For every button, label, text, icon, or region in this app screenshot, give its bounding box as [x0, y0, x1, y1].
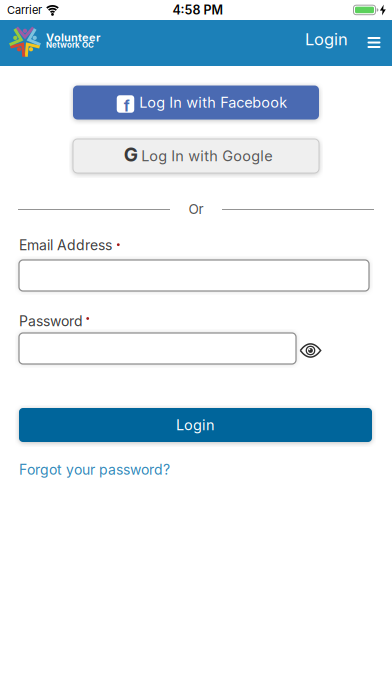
button[interactable]: f: [73, 85, 319, 119]
staticText: G: [124, 143, 138, 166]
button[interactable]: G: [73, 139, 319, 173]
staticText: Password: [19, 313, 83, 329]
staticText: Log In with Google: [141, 147, 272, 164]
staticText: Login: [176, 416, 215, 433]
staticText: 4:58 PM: [172, 3, 223, 17]
staticText: Forgot your password?: [19, 461, 170, 478]
staticText: Volunteer: [46, 31, 100, 44]
staticText: Or: [188, 201, 203, 217]
staticText: Carrier: [7, 3, 42, 16]
button[interactable]: Forgot your password?: [19, 461, 170, 478]
button[interactable]: Menu: [367, 37, 380, 48]
staticText: Login: [305, 29, 348, 49]
button[interactable]: Show password: [299, 342, 321, 358]
button[interactable]: Login: [19, 408, 372, 442]
staticText: Email Address: [19, 237, 112, 253]
staticText: f: [124, 97, 130, 115]
button[interactable]: Login: [305, 29, 348, 49]
staticText: Log In with Facebook: [139, 94, 287, 111]
staticText: Network OC: [46, 40, 94, 50]
